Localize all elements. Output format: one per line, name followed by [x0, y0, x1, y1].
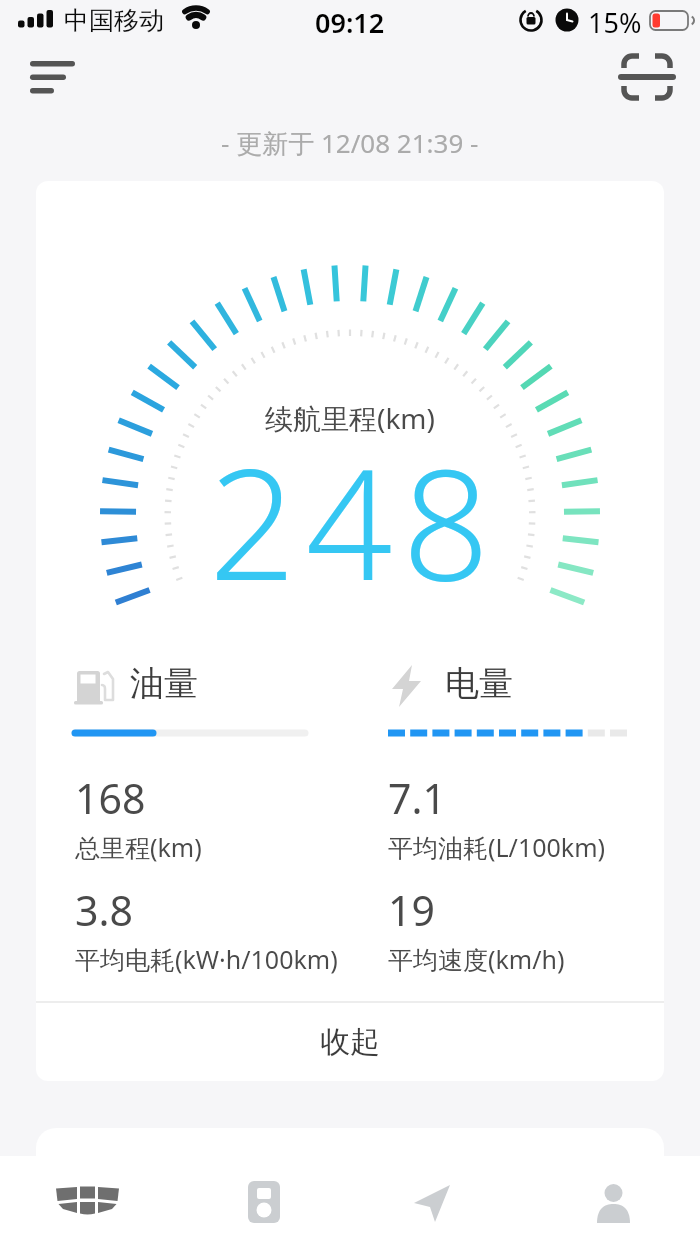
staticText: 续航里程(km): [265, 399, 435, 437]
staticText: 平均油耗(L/100km): [388, 830, 606, 864]
button[interactable]: [175, 1165, 350, 1245]
staticText: 168: [75, 770, 146, 826]
staticText: 平均电耗(kW·h/100km): [75, 942, 338, 976]
button[interactable]: 收起: [36, 1003, 664, 1081]
button[interactable]: [0, 1165, 175, 1245]
staticText: 3.8: [75, 882, 133, 938]
staticText: 19: [388, 882, 435, 938]
staticText: 平均速度(km/h): [388, 942, 565, 976]
button[interactable]: [525, 1165, 700, 1245]
button[interactable]: [612, 44, 684, 108]
staticText: 油量: [130, 662, 198, 705]
staticText: 收起: [320, 1023, 380, 1061]
staticText: 7.1: [388, 770, 446, 826]
staticText: 中国移动: [64, 5, 164, 36]
staticText: 09:12: [315, 4, 385, 41]
staticText: - 更新于 12/08 21:39 -: [221, 125, 479, 161]
staticText: 电量: [445, 662, 513, 705]
staticText: 248: [209, 418, 500, 625]
button[interactable]: [350, 1165, 525, 1245]
button[interactable]: [18, 48, 90, 106]
staticText: 15%: [588, 4, 642, 41]
staticText: 总里程(km): [75, 830, 202, 864]
